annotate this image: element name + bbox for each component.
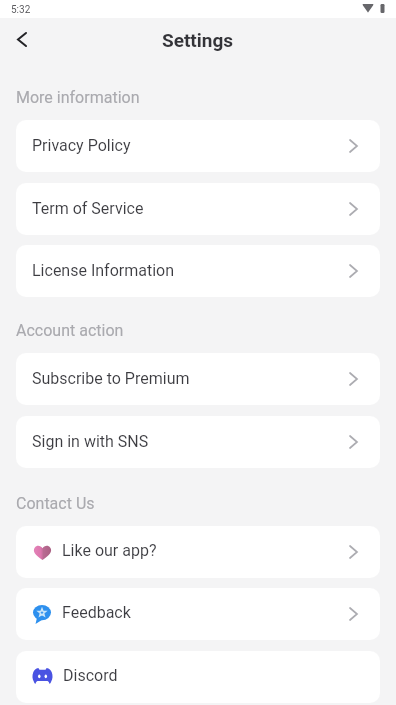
staticText: Feedback	[62, 603, 131, 622]
staticText: Like our app?	[62, 541, 157, 560]
staticText: Discord	[63, 666, 118, 685]
staticText: License Information	[32, 261, 175, 280]
staticText: Subscribe to Premium	[32, 369, 190, 388]
staticText: Settings	[162, 29, 234, 51]
staticText: Privacy Policy	[32, 136, 131, 155]
button[interactable]: Privacy Policy	[16, 120, 380, 172]
button[interactable]: Subscribe to Premium	[16, 353, 380, 405]
button[interactable]: Sign in with SNS	[16, 416, 380, 468]
staticText: Account action	[16, 321, 124, 340]
staticText: Contact Us	[16, 494, 95, 513]
staticText: Sign in with SNS	[32, 432, 149, 451]
button[interactable]: Discord	[16, 651, 380, 703]
staticText: Term of Service	[32, 199, 144, 218]
button[interactable]: Like our app?	[16, 526, 380, 578]
button[interactable]: License Information	[16, 245, 380, 297]
button[interactable]: Feedback	[16, 588, 380, 640]
staticText: 5:32	[11, 4, 31, 16]
staticText: More information	[16, 88, 140, 107]
button[interactable]: Term of Service	[16, 183, 380, 235]
button[interactable]: Back	[4, 22, 40, 58]
